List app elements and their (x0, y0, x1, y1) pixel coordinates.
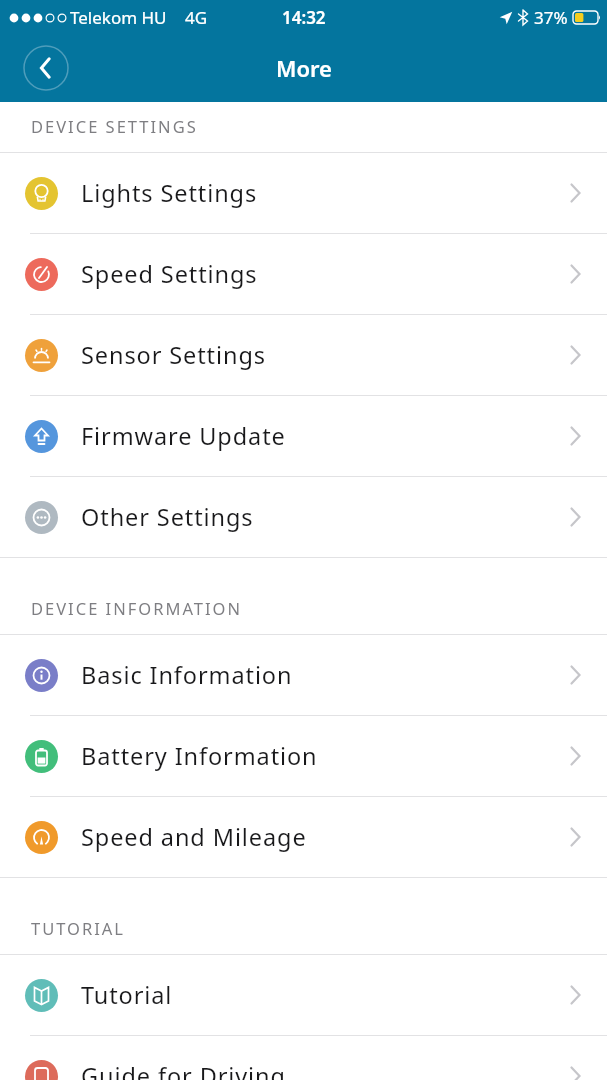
staticText: Other Settings (81, 501, 254, 533)
staticText: 4G (185, 6, 208, 29)
button[interactable]: Basic Information (0, 635, 607, 715)
staticText: 37% (534, 6, 568, 29)
staticText: TUTORIAL (31, 917, 126, 939)
staticText: More (276, 53, 332, 83)
staticText: Telekom HU (70, 6, 167, 29)
button[interactable]: Firmware Update (0, 396, 607, 476)
button[interactable]: Speed Settings (0, 234, 607, 314)
button[interactable]: Speed and Mileage (0, 797, 607, 877)
staticText: Speed Settings (81, 258, 258, 290)
staticText: 14:32 (282, 6, 326, 29)
button[interactable]: Lights Settings (0, 153, 607, 233)
staticText: DEVICE SETTINGS (31, 115, 198, 137)
button[interactable]: Other Settings (0, 477, 607, 557)
staticText: DEVICE INFORMATION (31, 597, 242, 619)
staticText: Basic Information (81, 659, 293, 691)
staticText: Guide for Driving (81, 1060, 286, 1080)
button[interactable]: Guide for Driving (0, 1036, 607, 1080)
button[interactable]: Battery Information (0, 716, 607, 796)
button[interactable]: Sensor Settings (0, 315, 607, 395)
button[interactable]: Tutorial (0, 955, 607, 1035)
staticText: Firmware Update (81, 420, 286, 452)
staticText: Tutorial (81, 979, 173, 1011)
staticText: Battery Information (81, 740, 318, 772)
staticText: Sensor Settings (81, 339, 266, 371)
staticText: Lights Settings (81, 177, 258, 209)
staticText: Speed and Mileage (81, 821, 307, 853)
button[interactable] (23, 45, 69, 91)
